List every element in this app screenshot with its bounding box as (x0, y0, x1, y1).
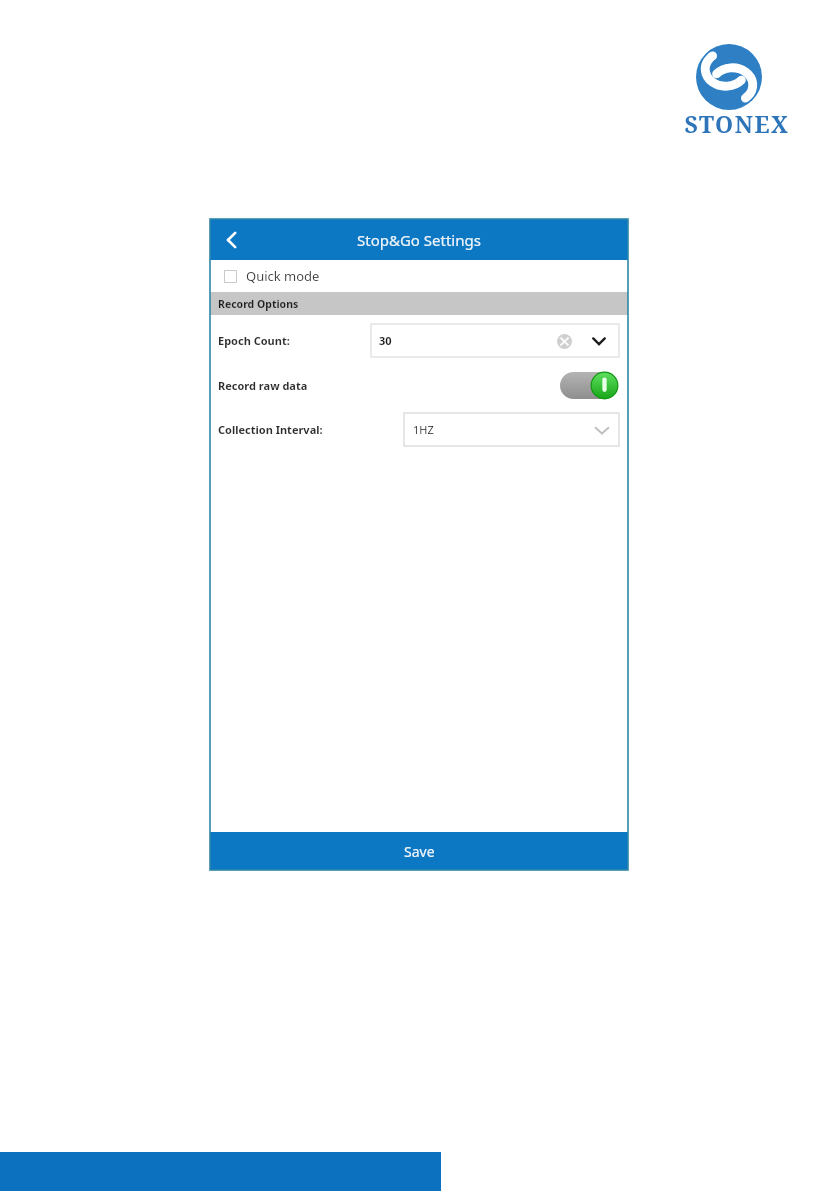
staticText: 1HZ (413, 422, 434, 437)
button[interactable]: 30 (371, 324, 619, 357)
button[interactable]: Record raw data toggle (560, 372, 618, 399)
staticText: Save (404, 842, 435, 861)
button[interactable]: Clear (553, 330, 575, 352)
staticText: Collection Interval: (218, 422, 323, 437)
button[interactable]: Expand epoch count (585, 327, 613, 355)
staticText: Record Options (218, 297, 299, 311)
staticText: STONEX (672, 108, 802, 139)
staticText: Epoch Count: (218, 333, 290, 348)
button[interactable]: Back (210, 219, 254, 260)
staticText: 30 (379, 333, 392, 348)
button[interactable]: Save (210, 832, 628, 870)
staticText: Record raw data (218, 378, 308, 393)
button[interactable]: Quick mode (210, 260, 628, 292)
staticText: Stop&Go Settings (357, 230, 481, 250)
button[interactable]: Collection interval dropdown (404, 413, 619, 446)
staticText: Quick mode (246, 267, 320, 285)
